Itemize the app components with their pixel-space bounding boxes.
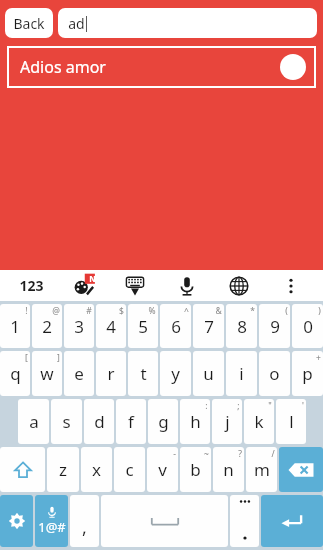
staticText: ": [268, 400, 272, 412]
staticText: p: [302, 362, 313, 385]
button[interactable]: ;: [212, 399, 242, 444]
staticText: /: [271, 448, 275, 460]
staticText: s: [62, 410, 71, 433]
button[interactable]: @: [32, 304, 62, 348]
button[interactable]: Themes: [57, 270, 109, 301]
button[interactable]: e: [64, 351, 94, 396]
staticText: ): [318, 305, 321, 317]
staticText: a: [29, 410, 39, 433]
staticText: h: [190, 410, 201, 433]
staticText: 6: [171, 315, 181, 338]
button[interactable]: a: [18, 399, 49, 444]
staticText: 1: [10, 315, 20, 338]
staticText: i: [239, 362, 244, 385]
button[interactable]: Voice input: [161, 270, 213, 301]
button[interactable]: Hide keyboard: [109, 270, 161, 301]
staticText: *: [250, 305, 255, 317]
button[interactable]: ]: [32, 351, 62, 396]
staticText: z: [59, 458, 67, 481]
staticText: ^: [184, 305, 189, 317]
button[interactable]: z: [47, 447, 79, 492]
staticText: ad: [68, 14, 85, 33]
button[interactable]: ,: [70, 495, 99, 547]
button[interactable]: y: [160, 351, 191, 396]
button[interactable]: [: [0, 351, 30, 396]
button[interactable]: ~: [180, 447, 211, 492]
button[interactable]: +: [292, 351, 323, 396]
staticText: v: [158, 458, 167, 481]
button[interactable]: x: [81, 447, 112, 492]
button[interactable]: Back: [5, 8, 53, 38]
button[interactable]: s: [51, 399, 82, 444]
button[interactable]: ): [292, 304, 323, 348]
button[interactable]: ?: [213, 447, 244, 492]
staticText: t: [140, 362, 147, 385]
staticText: [: [25, 352, 28, 364]
staticText: g: [158, 410, 169, 433]
staticText: m: [254, 458, 270, 481]
staticText: ~: [204, 448, 209, 460]
button[interactable]: Numbers: [6, 270, 57, 301]
button[interactable]: Play: [280, 54, 306, 80]
button[interactable]: %: [128, 304, 158, 348]
button[interactable]: $: [96, 304, 126, 348]
staticText: &: [215, 305, 222, 317]
button[interactable]: -: [147, 447, 178, 492]
button[interactable]: ': [276, 399, 306, 444]
staticText: y: [171, 362, 180, 385]
staticText: $: [119, 305, 124, 317]
button[interactable]: !: [0, 304, 30, 348]
button[interactable]: Symbols: [35, 495, 68, 547]
button[interactable]: More options: [265, 270, 317, 301]
staticText: c: [125, 458, 134, 481]
button[interactable]: Enter: [261, 495, 323, 547]
button[interactable]: &: [193, 304, 224, 348]
button[interactable]: Shift: [0, 447, 45, 492]
staticText: #: [86, 305, 92, 317]
button[interactable]: o: [259, 351, 290, 396]
staticText: 8: [237, 315, 247, 338]
staticText: d: [94, 410, 105, 433]
button[interactable]: *: [226, 304, 257, 348]
staticText: -: [173, 448, 176, 460]
button[interactable]: Adios amor: [7, 46, 316, 88]
button[interactable]: f: [116, 399, 146, 444]
button[interactable]: d: [84, 399, 114, 444]
staticText: n: [223, 458, 234, 481]
staticText: 1@#: [38, 518, 66, 536]
button[interactable]: /: [246, 447, 277, 492]
button[interactable]: ^: [160, 304, 191, 348]
staticText: :: [205, 400, 208, 412]
staticText: %: [148, 305, 156, 317]
staticText: (: [285, 305, 288, 317]
button[interactable]: Settings: [0, 495, 33, 547]
button[interactable]: i: [226, 351, 257, 396]
button[interactable]: ad: [58, 8, 317, 38]
staticText: q: [10, 362, 21, 385]
staticText: @: [52, 305, 60, 317]
staticText: ]: [57, 352, 60, 364]
staticText: e: [74, 362, 84, 385]
staticText: 3: [74, 315, 84, 338]
staticText: N: [89, 273, 96, 284]
button[interactable]: (: [259, 304, 290, 348]
button[interactable]: [230, 495, 259, 547]
button[interactable]: t: [128, 351, 158, 396]
staticText: k: [254, 410, 264, 433]
staticText: 123: [19, 276, 44, 295]
staticText: f: [128, 410, 134, 433]
staticText: 7: [204, 315, 214, 338]
button[interactable]: c: [114, 447, 145, 492]
button[interactable]: u: [193, 351, 224, 396]
button[interactable]: Backspace: [279, 447, 323, 492]
button[interactable]: Space: [101, 495, 228, 547]
staticText: 0: [303, 315, 313, 338]
staticText: ?: [238, 448, 242, 460]
button[interactable]: Language: [213, 270, 265, 301]
button[interactable]: ": [244, 399, 274, 444]
button[interactable]: r: [96, 351, 126, 396]
button[interactable]: #: [64, 304, 94, 348]
staticText: j: [225, 410, 230, 433]
button[interactable]: g: [148, 399, 178, 444]
button[interactable]: :: [180, 399, 210, 444]
